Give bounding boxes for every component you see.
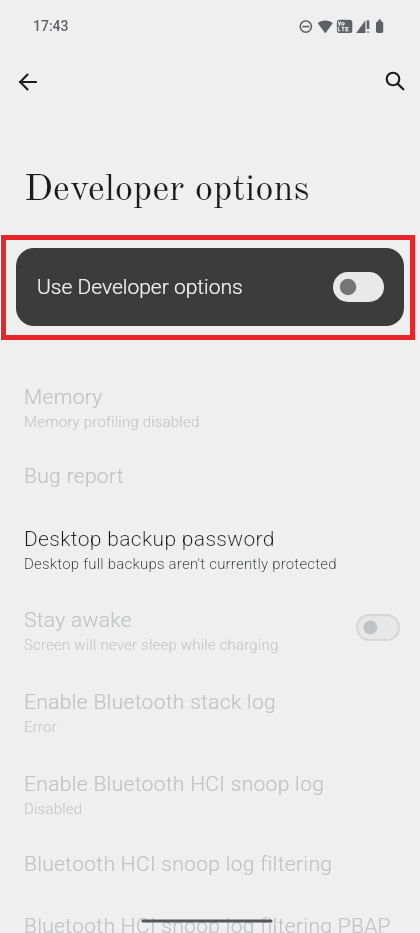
staticText: Memory profiling disabled bbox=[24, 413, 200, 431]
button[interactable]: Use Developer options toggle bbox=[333, 272, 384, 302]
button[interactable]: Enable Bluetooth stack log bbox=[0, 673, 420, 755]
staticText: Bug report bbox=[24, 464, 124, 489]
staticText: Error bbox=[24, 718, 57, 736]
staticText: Bluetooth HCI snoop log filtering bbox=[24, 852, 333, 877]
button[interactable]: Back bbox=[4, 58, 52, 106]
button[interactable]: Stay awake toggle bbox=[356, 614, 400, 641]
button[interactable]: Desktop backup password bbox=[0, 510, 420, 592]
button[interactable]: Memory bbox=[0, 368, 420, 450]
staticText: Memory bbox=[24, 385, 103, 410]
button[interactable]: Search bbox=[369, 55, 417, 103]
button[interactable]: Use Developer options bbox=[16, 248, 404, 326]
staticText: Use Developer options bbox=[37, 275, 243, 300]
staticText: Enable Bluetooth HCI snoop log bbox=[24, 772, 325, 797]
staticText: Screen will never sleep while charging bbox=[24, 636, 279, 654]
button[interactable]: Bluetooth HCI snoop log filtering PBAP bbox=[0, 897, 420, 933]
button[interactable]: Bluetooth HCI snoop log filtering bbox=[0, 835, 420, 897]
staticText: 17:43 bbox=[33, 18, 69, 34]
button[interactable]: Enable Bluetooth HCI snoop log bbox=[0, 755, 420, 837]
staticText: Developer options bbox=[24, 172, 310, 209]
staticText: Stay awake bbox=[24, 608, 132, 633]
staticText: Disabled bbox=[24, 800, 83, 818]
staticText: Enable Bluetooth stack log bbox=[24, 690, 277, 715]
staticText: Bluetooth HCI snoop log filtering PBAP bbox=[24, 914, 391, 933]
staticText: Desktop backup password bbox=[24, 527, 275, 552]
staticText: Desktop full backups aren't currently pr… bbox=[24, 555, 337, 573]
button[interactable]: Stay awake bbox=[0, 591, 420, 673]
button[interactable]: Bug report bbox=[0, 447, 420, 509]
